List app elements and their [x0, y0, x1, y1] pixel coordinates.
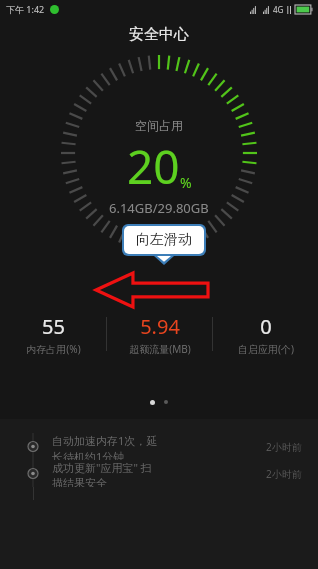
- other: Swipe left: [96, 273, 208, 307]
- staticText: 空间占用: [135, 118, 183, 133]
- staticText: 安全中心: [129, 25, 189, 44]
- staticText: 6.14GB/29.80GB: [109, 199, 209, 217]
- staticText: 自启应用(个): [238, 342, 294, 356]
- staticText: 下午 1:42: [6, 3, 45, 15]
- staticText: 超额流量(MB): [129, 342, 191, 356]
- button[interactable]: 5.94: [107, 308, 212, 360]
- staticText: 4G: [273, 4, 284, 15]
- staticText: 2小时前: [266, 440, 302, 454]
- button[interactable]: 0: [213, 308, 318, 360]
- staticText: 20: [127, 135, 180, 198]
- staticText: 成功更新"应用宝" 扫描结果安全: [52, 460, 159, 487]
- staticText: 0: [260, 313, 272, 340]
- staticText: 55: [42, 313, 65, 340]
- staticText: 自动加速内存1次，延长待机约1分钟。: [52, 433, 159, 460]
- button[interactable]: 向左滑动: [122, 224, 206, 265]
- button[interactable]: 成功更新"应用宝" 扫描结果安全: [0, 460, 318, 487]
- button[interactable]: 55: [0, 308, 106, 360]
- staticText: %: [180, 173, 192, 192]
- staticText: 5.94: [140, 313, 180, 340]
- staticText: 内存占用(%): [26, 342, 81, 356]
- button[interactable]: 自动加速内存1次，延长待机约1分钟。: [0, 433, 318, 460]
- staticText: 向左滑动: [136, 231, 192, 249]
- staticText: 2小时前: [266, 467, 302, 481]
